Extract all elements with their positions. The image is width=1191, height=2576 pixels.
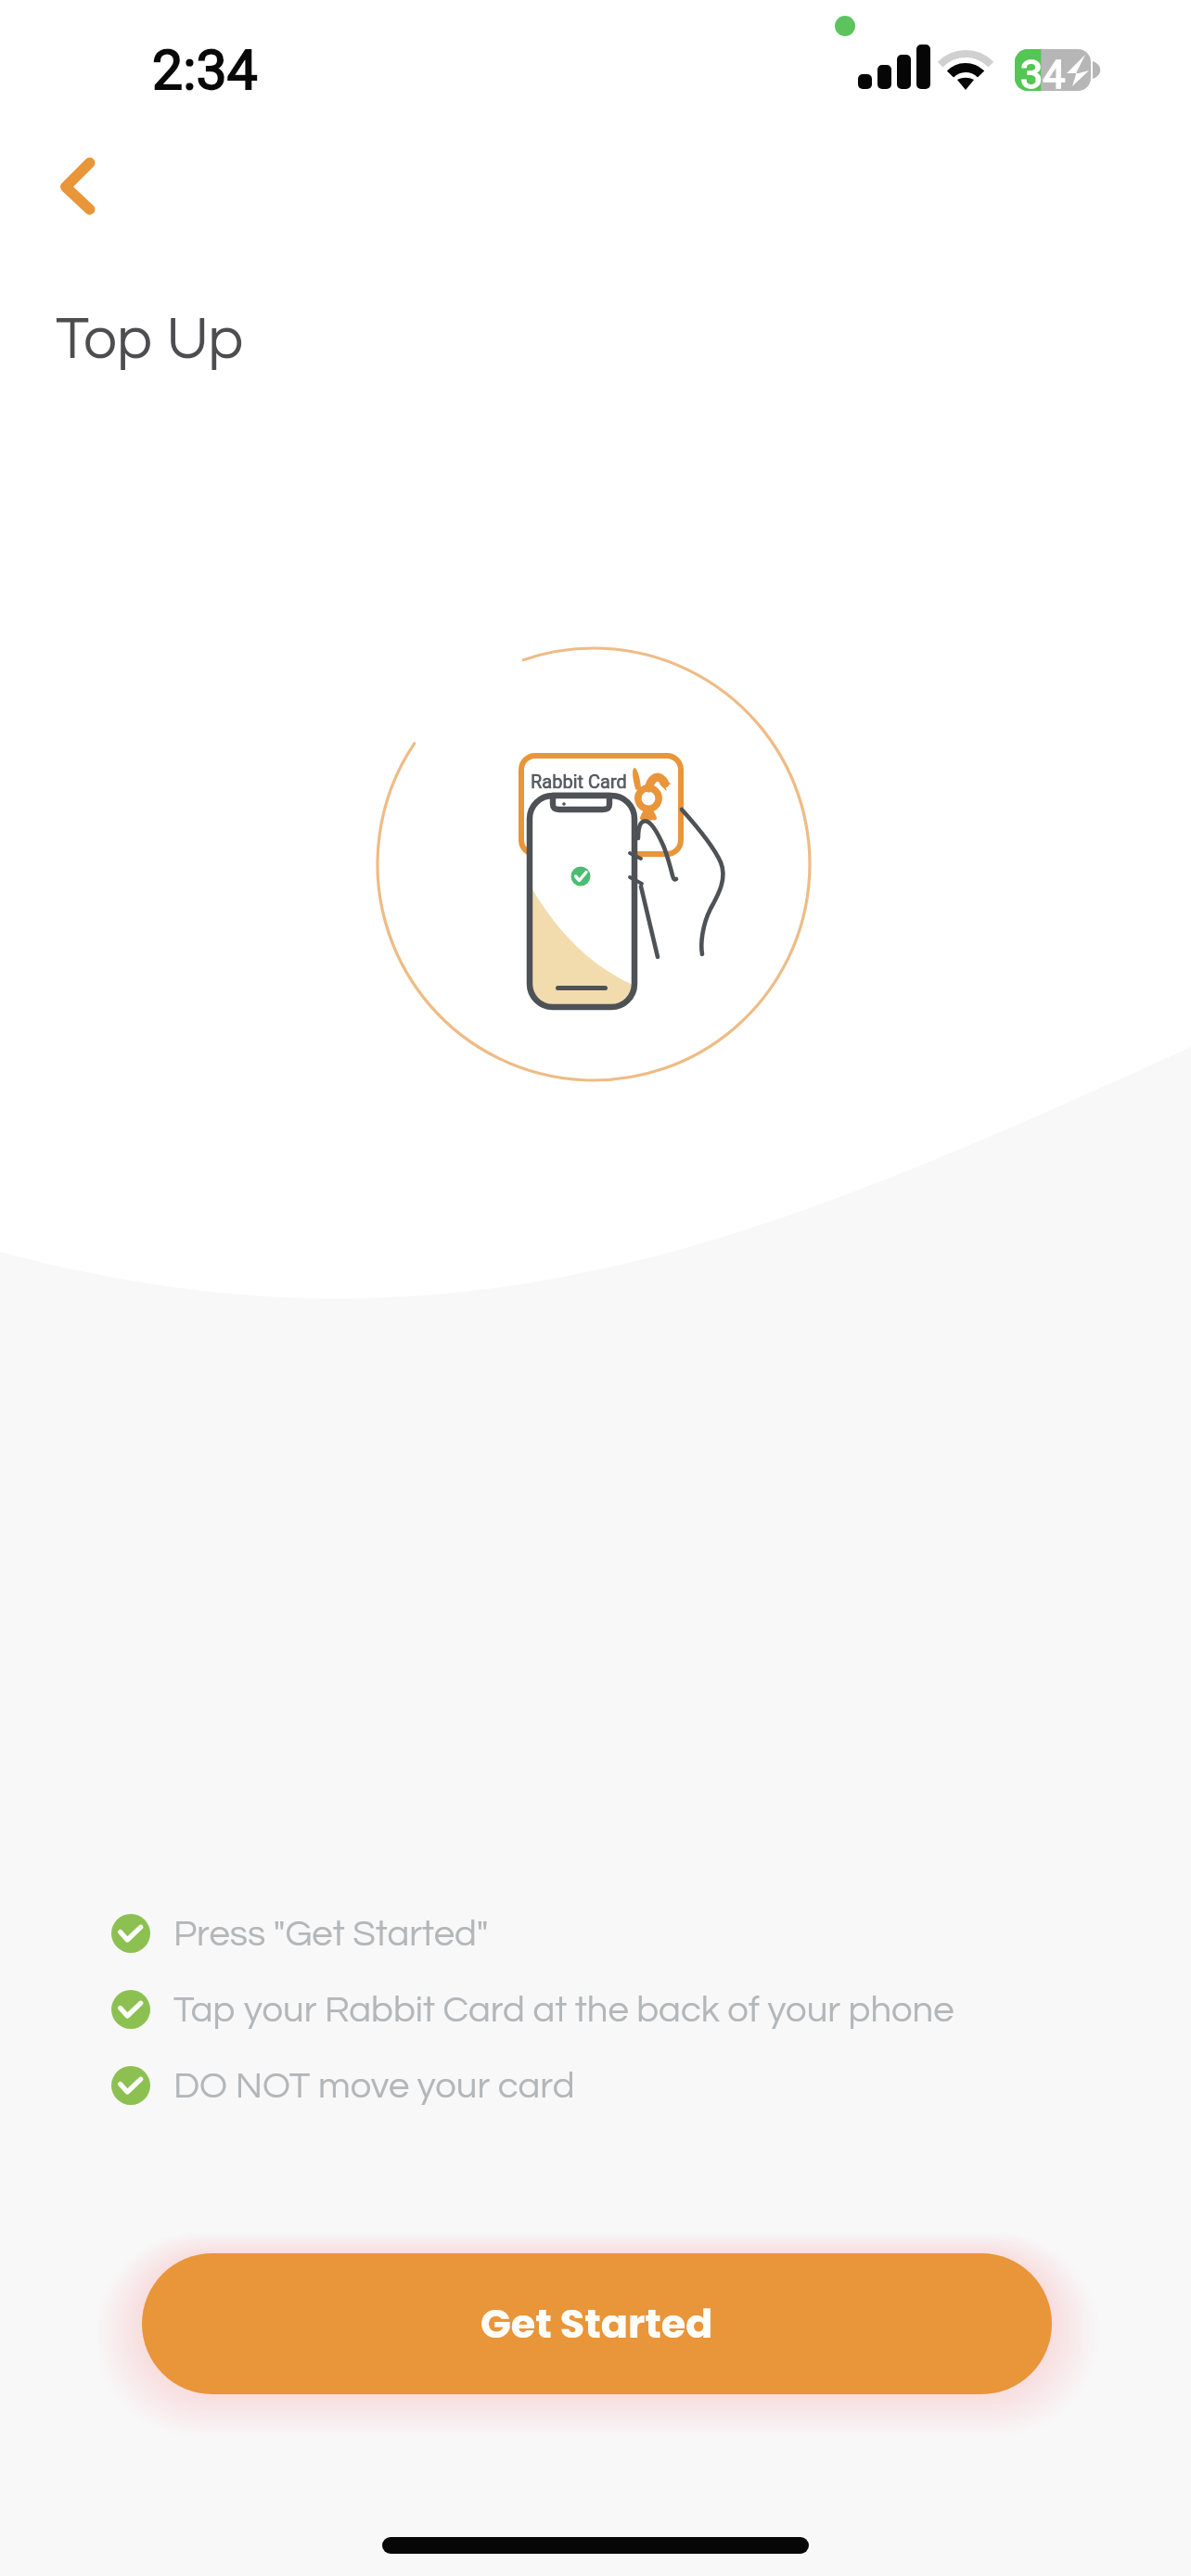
button[interactable]: Tap your Rabbit Card at the back of your… xyxy=(111,1990,954,2029)
staticText: Press "Get Started" xyxy=(173,1915,489,1953)
staticText: Rabbit Card xyxy=(531,771,627,792)
staticText: DO NOT move your card xyxy=(173,2067,575,2105)
staticText: Get Started xyxy=(480,2296,713,2352)
staticText: Tap your Rabbit Card at the back of your… xyxy=(173,1991,954,2029)
button[interactable]: Back xyxy=(26,139,119,232)
staticText: Top Up xyxy=(56,310,244,371)
button[interactable]: Get Started xyxy=(142,2253,1052,2394)
button[interactable]: DO NOT move your card xyxy=(111,2066,575,2105)
staticText: 2:34 xyxy=(152,38,258,102)
staticText: 34 xyxy=(1020,51,1066,97)
button[interactable]: Press "Get Started" xyxy=(111,1914,489,1953)
